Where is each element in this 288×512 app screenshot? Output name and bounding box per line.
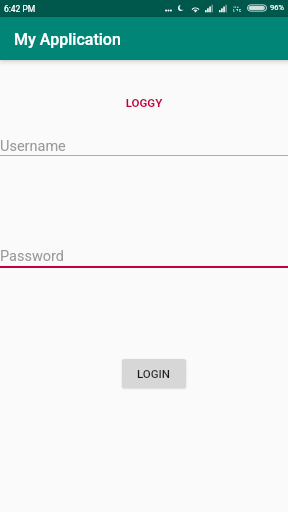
staticText: Username xyxy=(0,138,66,155)
staticText: LOGGY xyxy=(0,96,288,109)
button[interactable]: Username xyxy=(0,132,288,156)
staticText: Password xyxy=(0,248,65,265)
staticText: My Application xyxy=(14,30,121,49)
button[interactable]: Password xyxy=(0,242,288,266)
staticText: LOGIN xyxy=(137,367,171,380)
staticText: 6:42 PM xyxy=(4,4,36,14)
button[interactable]: LOGIN xyxy=(122,359,186,388)
staticText: 96% xyxy=(270,3,284,12)
